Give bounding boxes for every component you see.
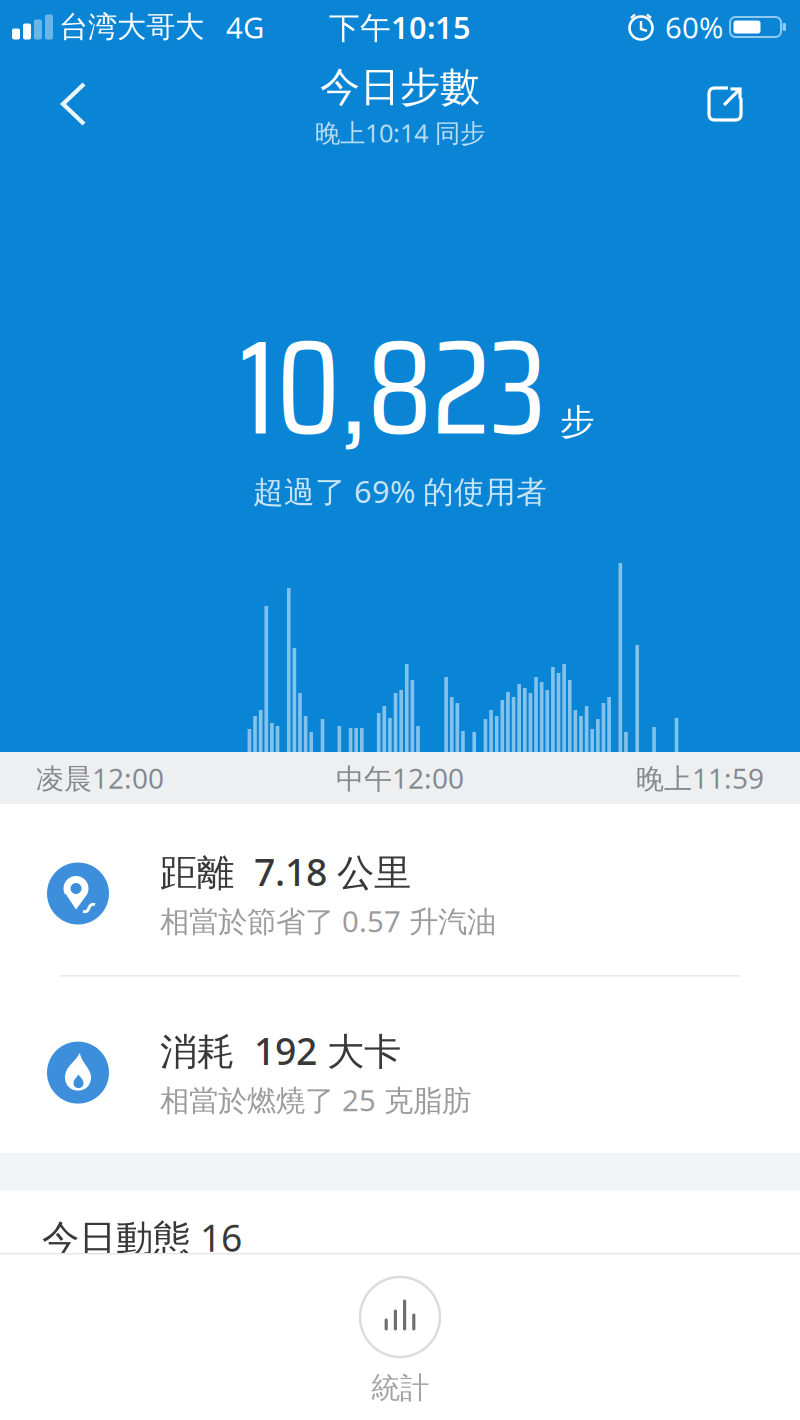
staticText: 消耗 192 大卡: [160, 1026, 401, 1075]
staticText: 超過了 69% 的使用者: [253, 471, 547, 511]
staticText: 中午12:00: [336, 759, 464, 797]
staticText: 統計: [371, 1370, 429, 1406]
staticText: 今日步數: [320, 63, 480, 112]
staticText: 4G: [226, 7, 264, 46]
staticText: 下午10:15: [329, 7, 471, 47]
staticText: 步: [560, 401, 595, 443]
staticText: 晚上11:59: [636, 759, 764, 797]
button[interactable]: 統計: [360, 1253, 440, 1406]
button[interactable]: Back: [44, 66, 104, 142]
staticText: 相當於燃燒了 25 克脂肪: [160, 1080, 471, 1119]
staticText: 60%: [665, 7, 723, 46]
staticText: 今日動態 16: [42, 1213, 242, 1262]
staticText: 晚上10:14 同步: [315, 116, 485, 149]
staticText: 台湾大哥大: [59, 9, 204, 45]
staticText: 凌晨12:00: [36, 759, 164, 797]
button[interactable]: Share: [695, 74, 755, 134]
staticText: 相當於節省了 0.57 升汽油: [160, 901, 496, 940]
staticText: 10,823: [239, 282, 546, 492]
staticText: 距離 7.18 公里: [160, 847, 411, 896]
